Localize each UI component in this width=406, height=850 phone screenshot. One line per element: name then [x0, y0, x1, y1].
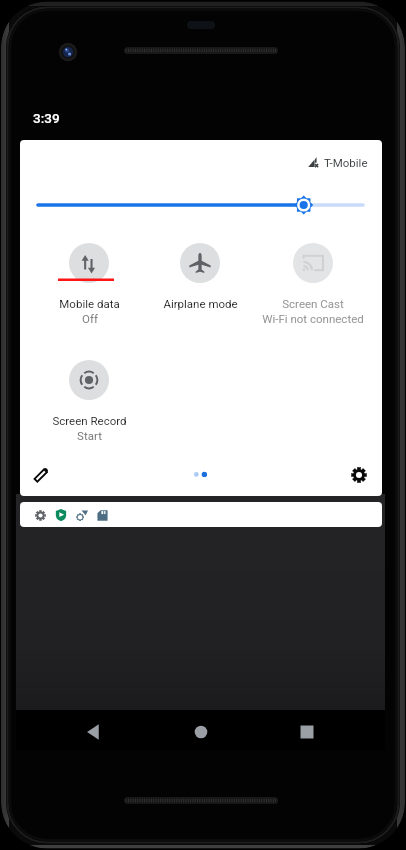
- button[interactable]: Recent apps: [291, 716, 323, 748]
- button[interactable]: [293, 243, 333, 283]
- button[interactable]: T-Mobile: [308, 156, 368, 169]
- staticText: Start: [77, 429, 102, 442]
- button[interactable]: Edit tiles: [27, 461, 55, 489]
- staticText: T-Mobile: [324, 156, 368, 169]
- staticText: Off: [82, 312, 98, 325]
- staticText: Screen Cast: [282, 297, 344, 310]
- button[interactable]: Settings: [345, 461, 373, 489]
- button[interactable]: [20, 502, 382, 527]
- staticText: Wi-Fi not connected: [262, 312, 364, 325]
- button[interactable]: [180, 243, 220, 283]
- button[interactable]: Home: [185, 716, 217, 748]
- staticText: Screen Record: [52, 414, 127, 427]
- button[interactable]: [69, 243, 109, 283]
- staticText: Mobile data: [59, 297, 120, 310]
- button[interactable]: [69, 360, 109, 400]
- button[interactable]: Back: [77, 716, 109, 748]
- button[interactable]: Brightness: [28, 192, 374, 218]
- staticText: 3:39: [33, 110, 60, 126]
- staticText: Airplane mode: [163, 297, 238, 310]
